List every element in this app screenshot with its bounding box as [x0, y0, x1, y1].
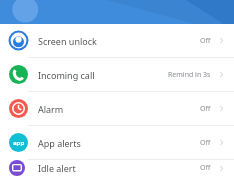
staticText: app [13, 139, 25, 147]
staticText: Off [200, 104, 211, 114]
button[interactable]: Alarm [0, 92, 234, 125]
staticText: Incoming call [38, 69, 95, 81]
button[interactable]: Idle alert [0, 160, 234, 176]
staticText: Screen unlock [38, 35, 97, 47]
button[interactable]: Incoming call [0, 58, 234, 91]
staticText: Off [200, 138, 211, 148]
staticText: Off [200, 163, 211, 173]
button[interactable]: app [0, 126, 234, 159]
staticText: App alerts [38, 137, 81, 149]
button[interactable]: Screen unlock [0, 24, 234, 57]
staticText: Remind in 3s [168, 70, 211, 80]
staticText: Alarm [38, 103, 64, 115]
staticText: Off [200, 36, 211, 46]
staticText: Idle alert [38, 162, 76, 174]
